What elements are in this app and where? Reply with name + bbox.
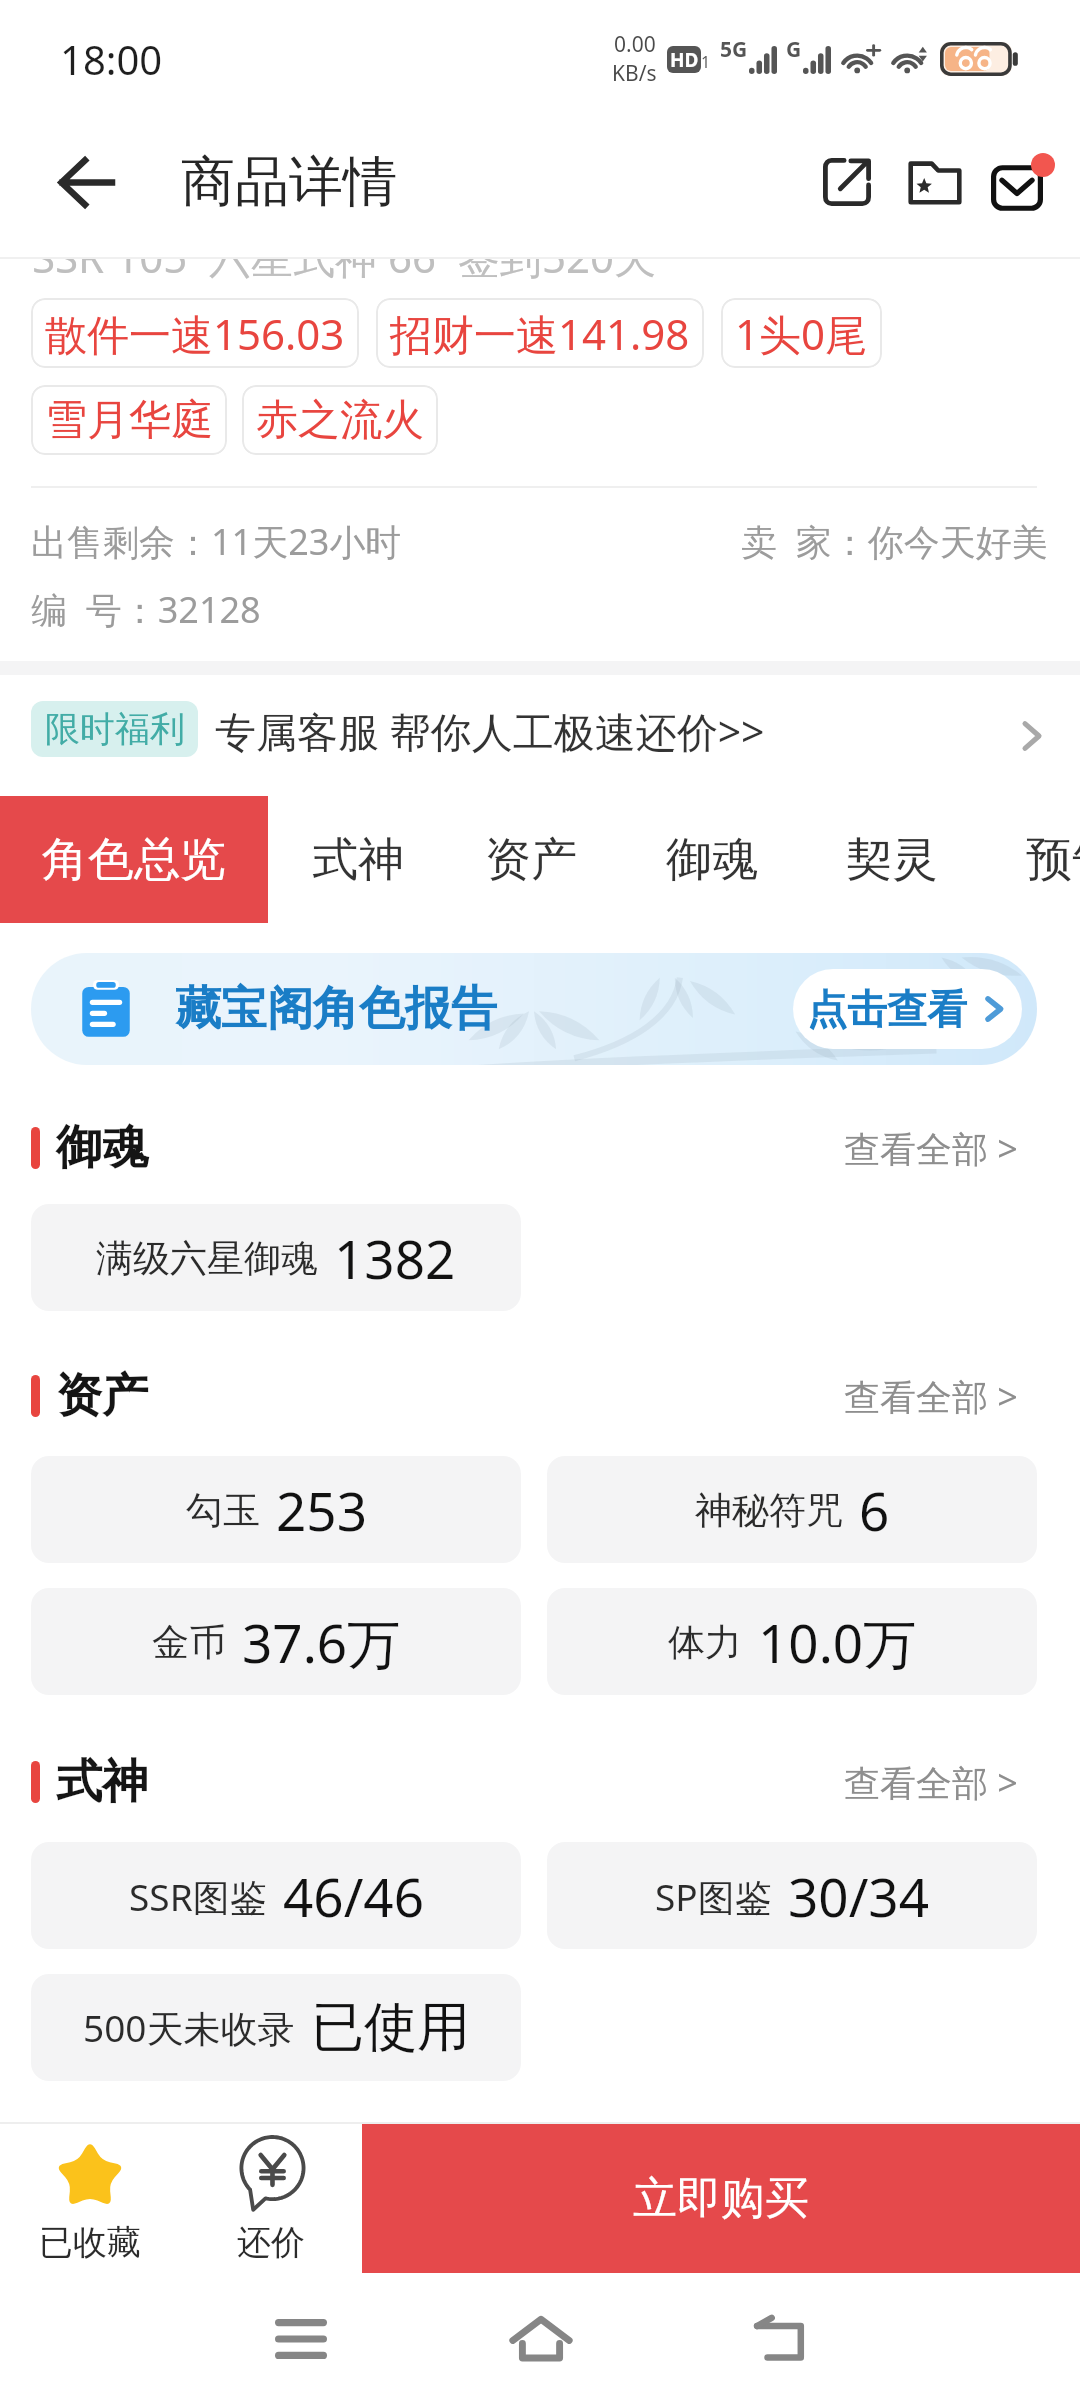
staticText: SSR图鉴 xyxy=(129,1871,267,1922)
button[interactable]: Home xyxy=(421,2278,660,2400)
staticText: 契灵 xyxy=(846,831,938,889)
staticText: 1 xyxy=(701,51,711,73)
staticText: 式神 xyxy=(56,1753,148,1811)
staticText: 已使用 xyxy=(311,1994,470,2061)
staticText: 点击查看 xyxy=(807,984,967,1034)
staticText: 5G xyxy=(720,35,748,64)
staticText: 雪月华庭 xyxy=(45,394,213,447)
staticText: 赤之流火 xyxy=(256,394,424,447)
staticText: KB/s xyxy=(612,59,657,88)
button[interactable]: 立即购买 xyxy=(362,2124,1080,2273)
button[interactable]: 勾玉 xyxy=(31,1456,521,1563)
button[interactable]: 1头0尾 xyxy=(721,298,882,368)
staticText: 招财一速141.98 xyxy=(390,305,690,362)
staticText: 商品详情 xyxy=(181,148,397,216)
staticText: 1382 xyxy=(334,1222,456,1294)
staticText: 0.00 xyxy=(614,30,656,59)
staticText: 6 xyxy=(859,1474,890,1546)
staticText: 30/34 xyxy=(788,1860,929,1932)
staticText: 式神 xyxy=(312,831,404,889)
button[interactable]: 满级六星御魂 xyxy=(31,1204,521,1311)
staticText: 1头0尾 xyxy=(735,305,868,362)
button[interactable]: 查看全部 > xyxy=(844,1124,1018,1173)
staticText: 御魂 xyxy=(666,831,758,889)
button[interactable]: 契灵 xyxy=(809,796,975,923)
staticText: 已收藏 xyxy=(39,2221,141,2264)
staticText: 还价 xyxy=(237,2221,305,2264)
button[interactable]: SSR图鉴 xyxy=(31,1842,521,1949)
button[interactable]: Favorites xyxy=(891,138,979,226)
staticText: 散件一速156.03 xyxy=(45,305,345,362)
staticText: 编 号：32128 xyxy=(31,585,261,633)
staticText: 神秘符咒 xyxy=(695,1487,843,1534)
button[interactable]: Share xyxy=(803,138,891,226)
button[interactable]: 赤之流火 xyxy=(242,385,438,455)
staticText: 37.6万 xyxy=(242,1606,401,1678)
button[interactable]: 雪月华庭 xyxy=(31,385,227,455)
button[interactable]: 体力 xyxy=(547,1588,1037,1695)
button[interactable]: 式神 xyxy=(268,796,447,923)
staticText: 立即购买 xyxy=(633,2171,809,2226)
button[interactable]: 角色总览 xyxy=(0,796,268,923)
button[interactable]: 预告 xyxy=(975,796,1080,923)
staticText: 500天未收录 xyxy=(83,2002,295,2053)
staticText: 预告 xyxy=(1026,831,1080,889)
button[interactable]: Messages xyxy=(979,138,1067,226)
button[interactable]: 藏宝阁角色报告 xyxy=(31,953,1037,1065)
staticText: 限时福利 xyxy=(45,707,185,751)
staticText: 角色总览 xyxy=(42,831,226,889)
staticText: 资产 xyxy=(485,831,577,889)
button[interactable]: 资产 xyxy=(447,796,615,923)
staticText: 藏宝阁角色报告 xyxy=(175,980,497,1038)
staticText: 体力 xyxy=(668,1619,742,1666)
button[interactable]: Recent apps xyxy=(181,2278,421,2400)
button[interactable]: 御魂 xyxy=(615,796,809,923)
staticText: 查看全部 > xyxy=(844,1372,1018,1421)
button[interactable]: 神秘符咒 xyxy=(547,1456,1037,1563)
button[interactable]: 查看全部 > xyxy=(844,1758,1018,1807)
staticText: 46/46 xyxy=(283,1860,424,1932)
button[interactable]: 限时福利 xyxy=(0,675,1080,796)
staticText: 御魂 xyxy=(56,1119,148,1177)
staticText: 查看全部 > xyxy=(844,1124,1018,1173)
button[interactable]: 招财一速141.98 xyxy=(376,298,704,368)
staticText: 出售剩余：11天23小时 xyxy=(31,517,402,565)
staticText: G xyxy=(786,35,802,64)
button[interactable]: 还价 xyxy=(180,2122,362,2278)
staticText: 专属客服 帮你人工极速还价>> xyxy=(215,703,765,759)
staticText: HD xyxy=(670,47,699,73)
staticText: SSR 105 六星式神 66 签到520天 xyxy=(32,228,656,285)
staticText: 18:00 xyxy=(60,32,163,86)
staticText: 卖 家：你今天好美 xyxy=(741,517,1048,565)
staticText: 253 xyxy=(276,1474,367,1546)
button[interactable]: 已收藏 xyxy=(0,2122,180,2278)
staticText: 资产 xyxy=(56,1367,148,1425)
staticText: 10.0万 xyxy=(758,1606,917,1678)
button[interactable]: 金币 xyxy=(31,1588,521,1695)
button[interactable]: SP图鉴 xyxy=(547,1842,1037,1949)
button[interactable]: Back xyxy=(660,2278,899,2400)
staticText: SP图鉴 xyxy=(655,1871,772,1922)
button[interactable]: 散件一速156.03 xyxy=(31,298,359,368)
staticText: 满级六星御魂 xyxy=(96,1235,318,1282)
button[interactable]: 500天未收录 xyxy=(31,1974,521,2081)
button[interactable]: Back xyxy=(36,132,136,232)
button[interactable]: 查看全部 > xyxy=(844,1372,1018,1421)
staticText: 金币 xyxy=(152,1619,226,1666)
staticText: 查看全部 > xyxy=(844,1758,1018,1807)
staticText: 勾玉 xyxy=(186,1487,260,1534)
